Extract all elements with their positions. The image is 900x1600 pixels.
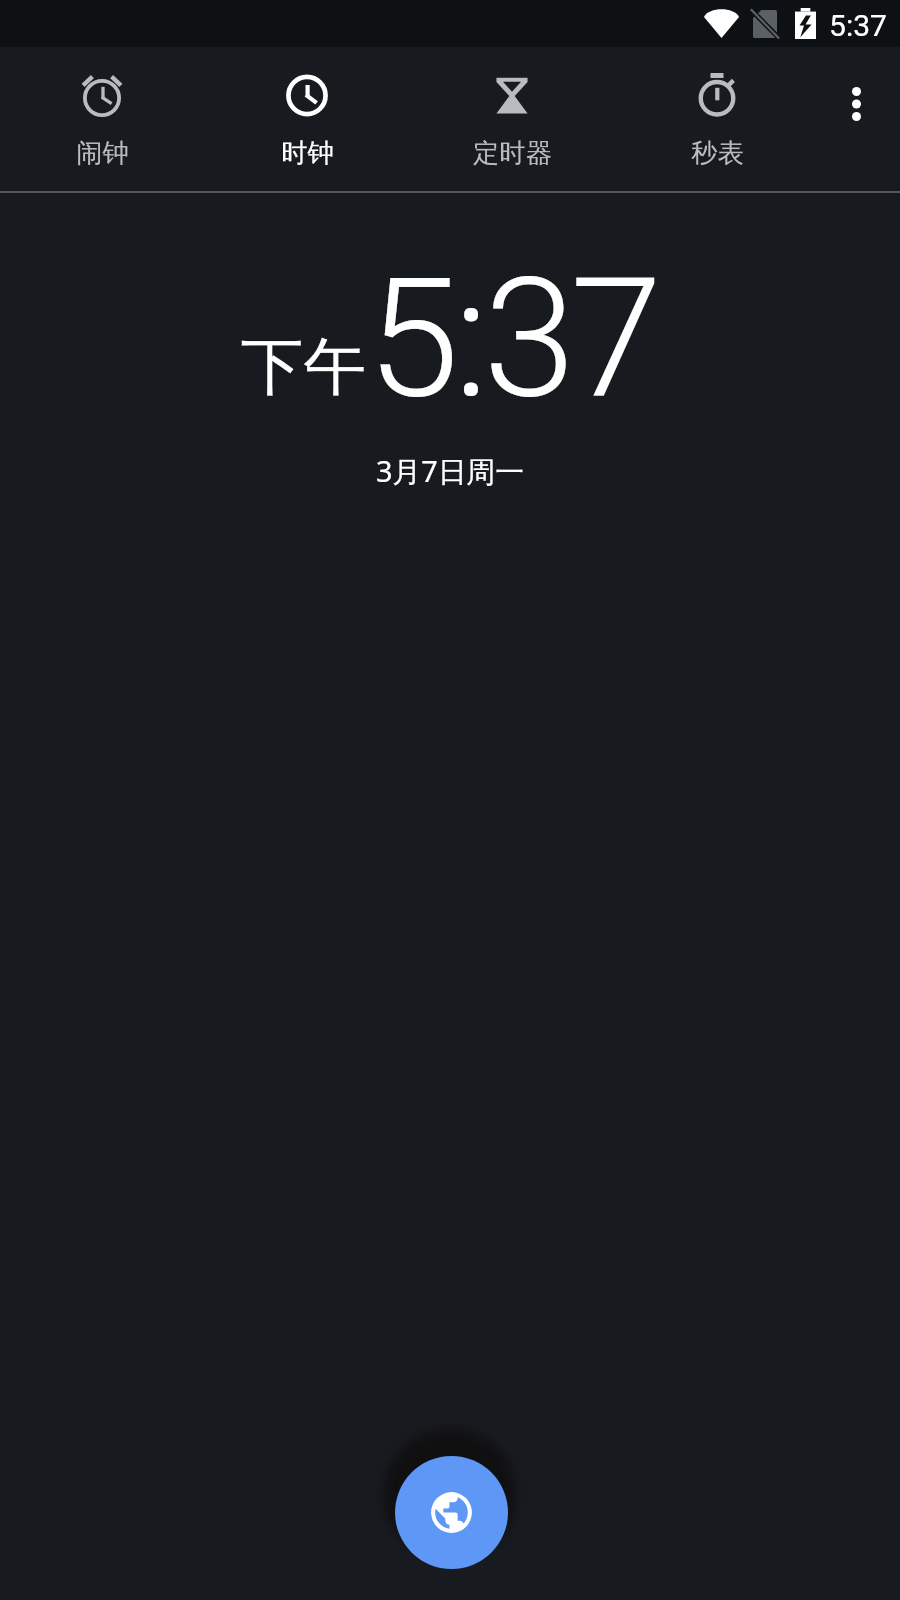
staticText: 闹钟 (76, 137, 129, 170)
staticText: 3月7日周一 (0, 451, 900, 490)
button[interactable]: World clock (395, 1456, 508, 1569)
button[interactable]: 秒表 (616, 48, 818, 191)
other: Battery charging (795, 8, 816, 39)
button[interactable]: 闹钟 (1, 48, 203, 191)
staticText: 时钟 (281, 137, 334, 170)
staticText: 5:37 (829, 8, 887, 43)
staticText: 秒表 (691, 137, 744, 170)
staticText: 定时器 (473, 137, 552, 170)
other: No SIM card (753, 10, 777, 38)
button[interactable]: 时钟 (206, 48, 408, 191)
staticText: 5:37 (367, 241, 657, 436)
staticText: 下午 (241, 328, 366, 407)
button[interactable]: More options (822, 70, 890, 138)
other: Wi-Fi connected (704, 9, 739, 38)
button[interactable]: 定时器 (411, 48, 613, 191)
